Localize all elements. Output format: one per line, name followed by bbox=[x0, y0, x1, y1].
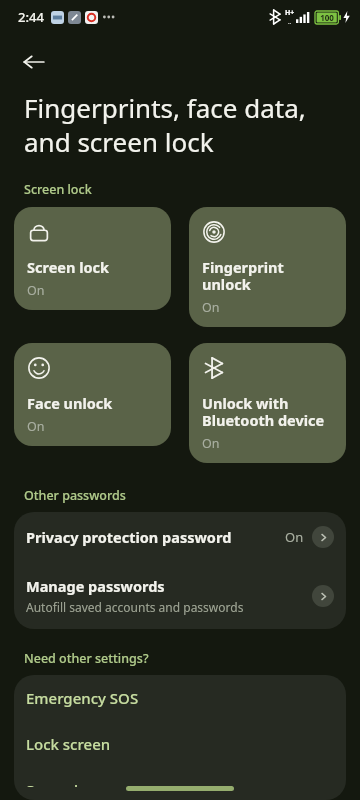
staticText: On bbox=[285, 528, 304, 546]
staticText: Privacy protection password bbox=[26, 527, 232, 547]
staticText: Autofill saved accounts and passwords bbox=[26, 599, 244, 615]
staticText: Face unlock bbox=[27, 393, 113, 413]
button[interactable]: Lock screen bbox=[14, 721, 346, 767]
button[interactable]: Emergency SOS bbox=[14, 675, 346, 721]
staticText: Other passwords bbox=[24, 487, 126, 504]
staticText: On bbox=[27, 282, 45, 299]
button[interactable]: Second space bbox=[14, 767, 346, 800]
staticText: Unlock with Bluetooth device bbox=[202, 393, 325, 430]
staticText: Emergency SOS bbox=[26, 688, 139, 708]
button[interactable]: Privacy protection password bbox=[14, 512, 346, 562]
button[interactable]: Unlock with Bluetooth device bbox=[189, 343, 346, 463]
staticText: Fingerprint unlock bbox=[202, 257, 284, 294]
staticText: 100 bbox=[320, 12, 334, 23]
staticText: Fingerprints, face data, and screen lock bbox=[24, 90, 340, 159]
button[interactable]: Face unlock bbox=[14, 343, 171, 446]
button[interactable]: Manage passwords bbox=[14, 562, 346, 629]
button[interactable]: Back bbox=[12, 40, 56, 84]
staticText: 2:44 bbox=[18, 8, 44, 26]
staticText: Screen lock bbox=[27, 257, 110, 277]
staticText: Second space bbox=[26, 780, 124, 787]
button[interactable]: Fingerprint unlock bbox=[189, 207, 346, 327]
staticText: On bbox=[27, 418, 45, 435]
staticText: .. bbox=[288, 18, 292, 26]
button[interactable]: Screen lock bbox=[14, 207, 171, 310]
staticText: Need other settings? bbox=[24, 650, 149, 667]
staticText: Manage passwords bbox=[26, 576, 165, 596]
staticText: On bbox=[202, 299, 220, 316]
staticText: Lock screen bbox=[26, 734, 111, 754]
staticText: On bbox=[202, 435, 220, 452]
staticText: Screen lock bbox=[24, 181, 92, 198]
staticText: H+ bbox=[285, 8, 295, 18]
